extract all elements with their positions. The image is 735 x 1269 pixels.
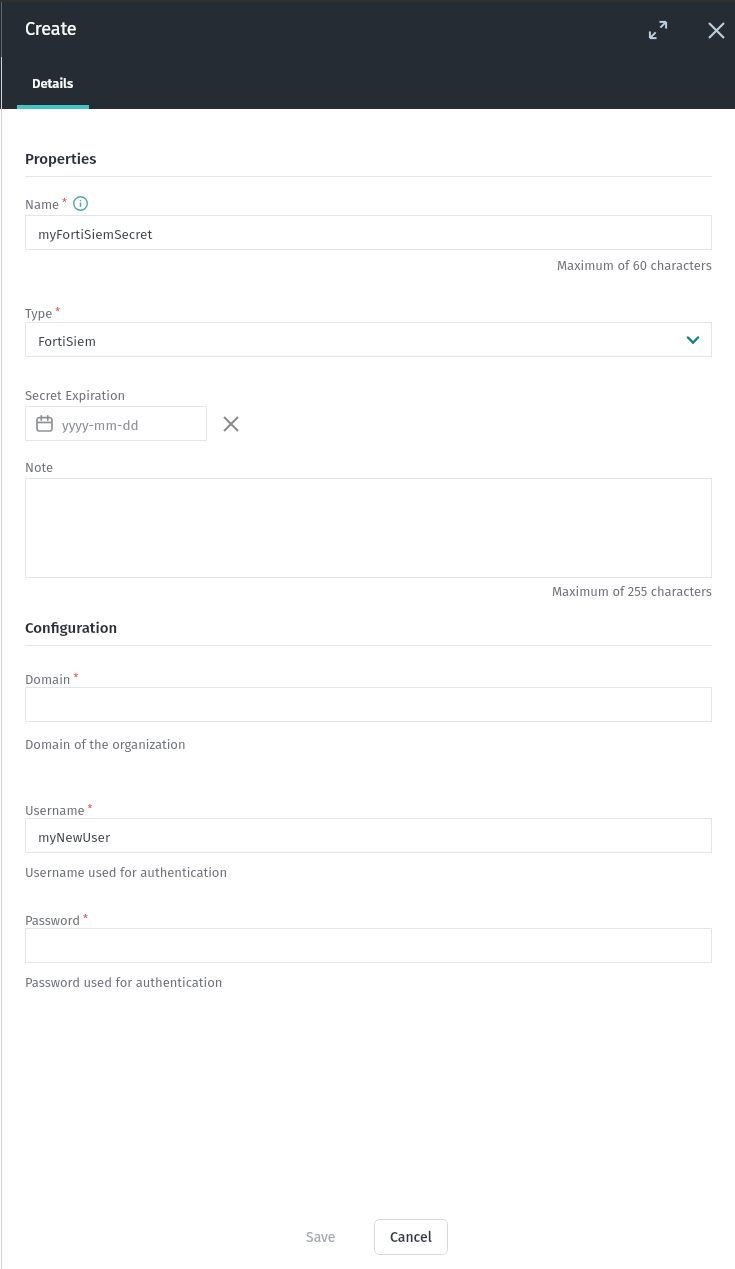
button[interactable]: Details	[17, 57, 89, 109]
button[interactable]: Save	[292, 1219, 350, 1255]
button[interactable]: Clear date	[215, 408, 247, 440]
staticText: Cancel	[390, 1229, 432, 1246]
staticText: Name *	[25, 196, 67, 212]
staticText: Save	[306, 1229, 336, 1246]
staticText: Domain *	[25, 671, 79, 687]
staticText: Password used for authentication	[25, 975, 223, 991]
staticText: FortiSiem	[38, 333, 97, 349]
staticText: Create	[25, 18, 77, 40]
button[interactable]	[25, 478, 712, 578]
button[interactable]: Expand	[636, 8, 680, 52]
button[interactable]: myNewUser	[25, 818, 712, 853]
staticText: Maximum of 255 characters	[552, 584, 712, 600]
staticText: yyyy-mm-dd	[62, 417, 139, 433]
button[interactable]: Info	[72, 195, 89, 212]
staticText: myNewUser	[38, 829, 111, 845]
button[interactable]: FortiSiem	[25, 322, 712, 357]
staticText: Password *	[25, 912, 88, 928]
staticText: myFortiSiemSecret	[38, 226, 153, 242]
button[interactable]: Close	[694, 8, 735, 52]
staticText: Secret Expiration	[25, 388, 126, 404]
staticText: Configuration	[25, 619, 118, 637]
staticText: Maximum of 60 characters	[557, 258, 712, 274]
staticText: Properties	[25, 150, 97, 168]
staticText: Type *	[25, 305, 61, 321]
button[interactable]	[25, 928, 712, 963]
staticText: Username used for authentication	[25, 865, 228, 881]
button[interactable]	[25, 687, 712, 722]
staticText: Domain of the organization	[25, 737, 186, 753]
staticText: Note	[25, 460, 54, 476]
button[interactable]: Cancel	[374, 1219, 448, 1255]
staticText: Details	[32, 76, 74, 92]
staticText: Username *	[25, 802, 93, 818]
button[interactable]: myFortiSiemSecret	[25, 215, 712, 250]
button[interactable]: yyyy-mm-dd	[25, 406, 207, 441]
